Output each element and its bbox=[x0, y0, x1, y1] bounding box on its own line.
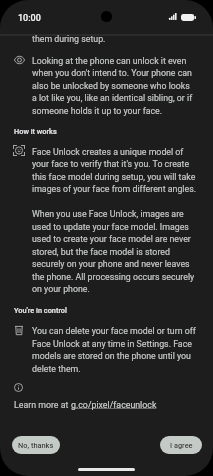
button[interactable]: g.co/pixel/faceunlock bbox=[71, 400, 157, 410]
staticText: also be unlocked by someone who looks bbox=[32, 81, 190, 91]
staticText: your face to verify that it's you. To cr… bbox=[32, 159, 190, 169]
staticText: Face Unlock creates a unique model of bbox=[32, 147, 184, 157]
staticText: when you don't intend to. Your phone can bbox=[32, 68, 192, 78]
staticText: Face Unlock at any time in Settings. Fac… bbox=[32, 339, 192, 349]
staticText: You can delete your face model or turn o… bbox=[32, 326, 196, 336]
staticText: 10:00 bbox=[18, 13, 41, 24]
button[interactable]: I agree bbox=[160, 436, 202, 454]
button[interactable]: No, thanks bbox=[12, 436, 60, 454]
staticText: used to update your face model. Images bbox=[32, 222, 189, 232]
staticText: stored, but the face model is stored bbox=[32, 247, 170, 257]
staticText: someone holds it up to your face. bbox=[32, 106, 163, 116]
staticText: this face model during setup, you will t… bbox=[32, 172, 196, 182]
staticText: them during setup. bbox=[32, 34, 106, 44]
staticText: the phone. All processing occurs securel… bbox=[32, 272, 195, 282]
staticText: No, thanks bbox=[18, 441, 54, 450]
staticText: securely on your phone and never leaves bbox=[32, 259, 190, 269]
staticText: Learn more at bbox=[14, 400, 71, 410]
staticText: a lot like you, like an identical siblin… bbox=[32, 93, 193, 103]
staticText: I agree bbox=[170, 441, 193, 450]
staticText: on your phone. bbox=[32, 284, 90, 294]
staticText: used to create your face model are never bbox=[32, 234, 191, 244]
staticText: delete them. bbox=[32, 364, 81, 374]
staticText: images of your face from different angle… bbox=[32, 184, 197, 194]
staticText: Looking at the phone can unlock it even bbox=[32, 56, 187, 66]
staticText: models are stored on the phone until you bbox=[32, 351, 191, 361]
staticText: When you use Face Unlock, images are bbox=[32, 209, 184, 219]
staticText: How it works bbox=[14, 127, 57, 136]
staticText: You're in control bbox=[14, 306, 67, 315]
